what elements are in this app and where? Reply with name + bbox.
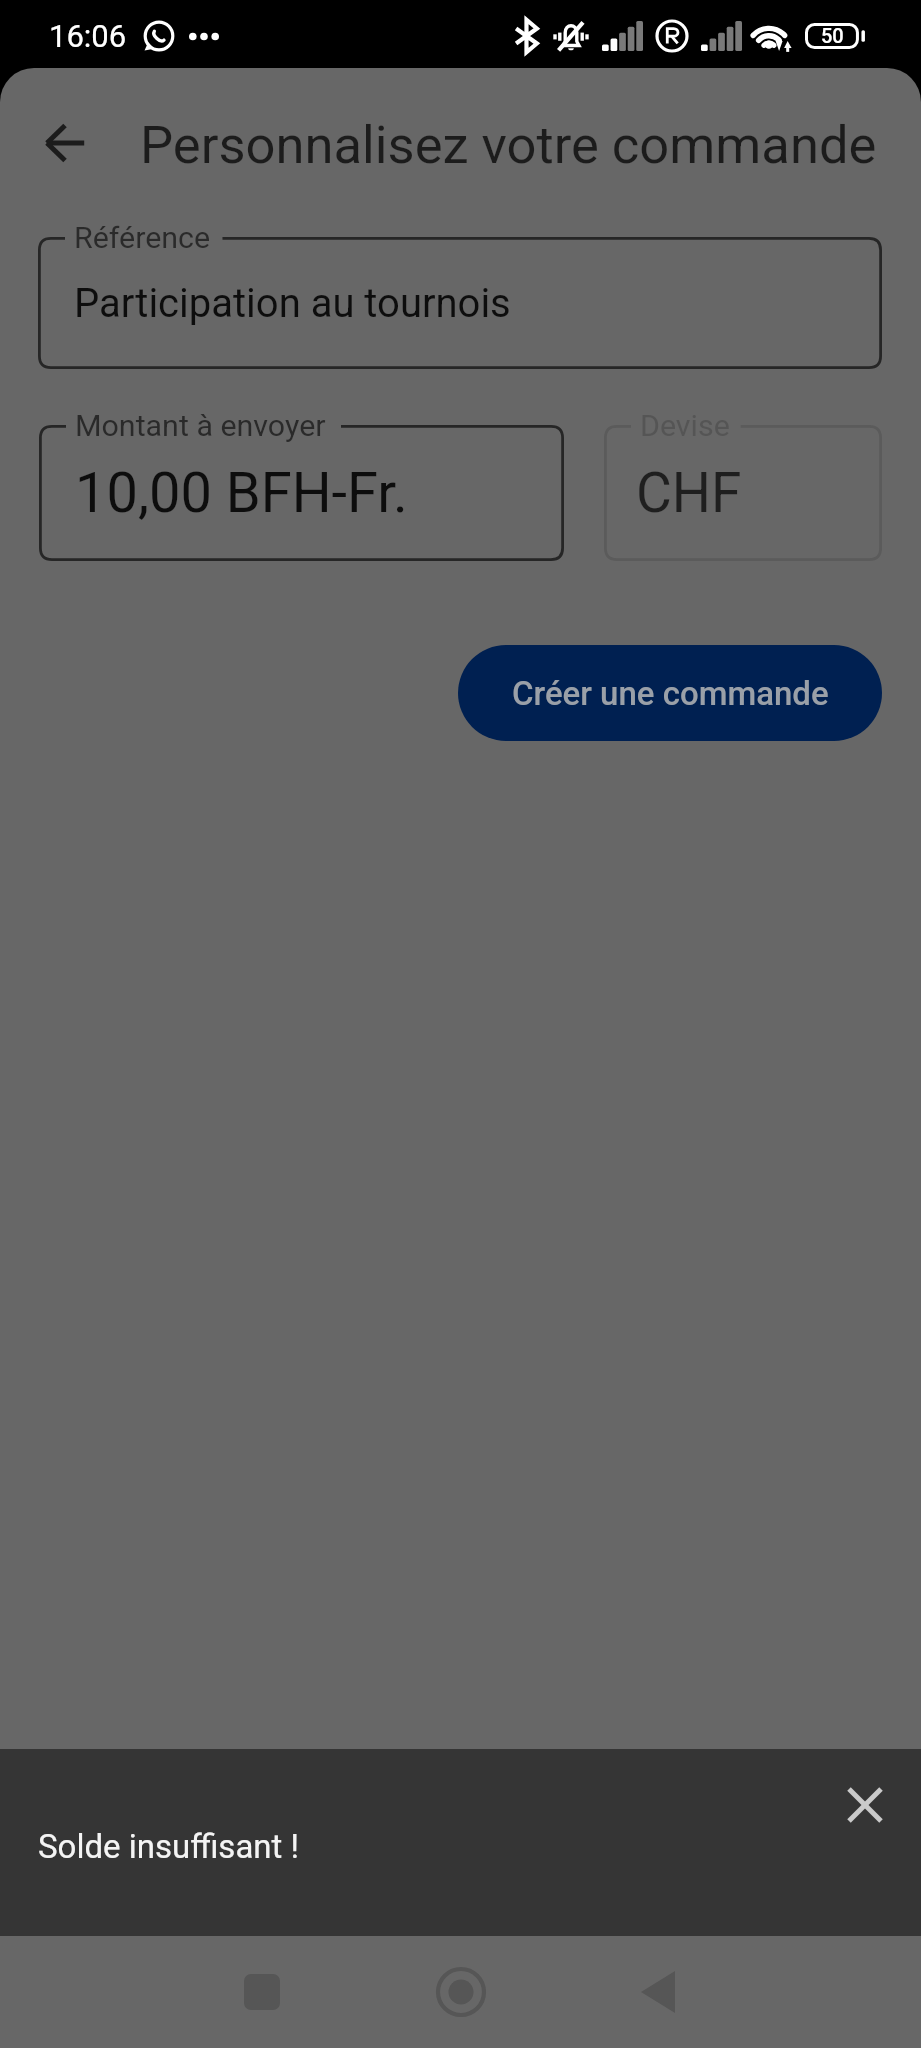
staticText: 10,00 BFH-Fr. xyxy=(75,460,408,526)
staticText: Solde insuffisant ! xyxy=(38,1827,300,1866)
button[interactable]: Référence xyxy=(38,237,882,369)
button[interactable]: Back xyxy=(613,1936,703,2048)
staticText: Montant à envoyer xyxy=(75,408,326,444)
staticText: Participation au tournois xyxy=(74,280,511,327)
staticText: 50 xyxy=(821,24,844,47)
button[interactable]: Créer une commande xyxy=(458,645,882,741)
staticText: Créer une commande xyxy=(512,674,829,713)
staticText: Personnalisez votre commande xyxy=(140,114,877,176)
button[interactable]: Recent apps xyxy=(217,1936,307,2048)
button[interactable]: Montant à envoyer xyxy=(39,425,564,561)
staticText: CHF xyxy=(636,461,742,525)
button[interactable]: Home xyxy=(416,1936,506,2048)
staticText: Devise xyxy=(640,408,730,444)
button[interactable]: Dismiss xyxy=(833,1773,897,1837)
staticText: Référence xyxy=(74,220,211,256)
button[interactable]: Devise xyxy=(604,425,882,561)
button[interactable]: Back xyxy=(25,103,105,183)
staticText: 16:06 xyxy=(49,18,127,54)
